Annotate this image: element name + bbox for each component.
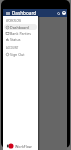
button[interactable]: Sign Out (4, 51, 37, 57)
button[interactable]: Open navigation drawer (5, 9, 11, 17)
staticText: ACCOUNT (6, 46, 19, 50)
staticText: Pending (10, 43, 21, 47)
staticText: Sign Out (10, 52, 25, 57)
staticText: Payment Due (10, 48, 32, 53)
button[interactable]: Profile (61, 9, 66, 17)
staticText: Dashboard (12, 10, 37, 16)
button[interactable]: Status (4, 36, 37, 42)
button[interactable]: Bank Parties (4, 30, 37, 36)
staticText: Status (10, 37, 21, 42)
button[interactable]: Search (56, 9, 61, 17)
staticText: WorkFlow (15, 144, 32, 149)
staticText: Bank Parties (10, 31, 32, 36)
staticText: Dashboard (10, 25, 29, 30)
staticText: WORKFLOW (6, 19, 21, 23)
button[interactable]: Dashboard (4, 24, 37, 30)
